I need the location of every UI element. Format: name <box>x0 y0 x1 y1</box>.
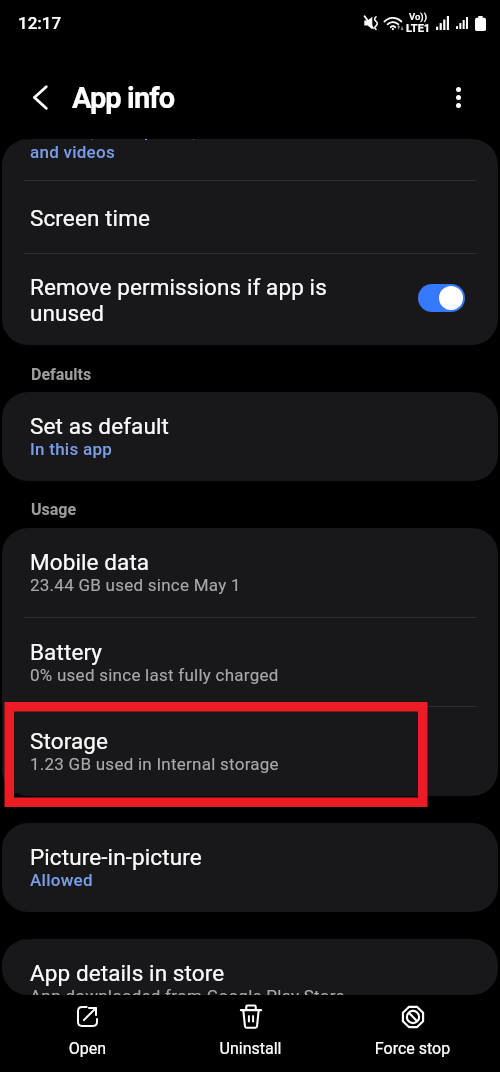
staticText: 12:17 <box>18 13 62 33</box>
button[interactable]: Force stop <box>337 995 488 1072</box>
button[interactable]: Remove permissions if app is unused <box>418 284 465 312</box>
staticText: In this app <box>30 439 113 459</box>
staticText: App downloaded from Google Play Store <box>30 986 345 995</box>
button[interactable]: Battery <box>2 618 498 707</box>
staticText: Set as default <box>30 413 169 439</box>
staticText: Screen time <box>30 205 151 231</box>
staticText: 23.44 GB used since May 1 <box>30 575 241 595</box>
staticText: Force stop <box>337 1039 488 1058</box>
staticText: Storage <box>30 728 109 754</box>
staticText: Usage <box>31 500 77 519</box>
staticText: Remove permissions if app is unused <box>30 274 342 326</box>
staticText: App details in store <box>30 960 225 986</box>
staticText: App info <box>72 81 175 115</box>
button[interactable]: Mobile data <box>2 528 498 617</box>
staticText: Camera, Microphone, Photos and videos <box>30 139 257 163</box>
button[interactable]: Navigate up <box>18 75 62 119</box>
button[interactable]: Storage <box>2 707 498 796</box>
button[interactable]: Picture-in-picture <box>2 823 498 912</box>
button[interactable]: Screen time <box>2 180 498 252</box>
button[interactable]: Open <box>12 995 163 1072</box>
button[interactable]: App details in store <box>2 939 498 995</box>
staticText: Battery <box>30 639 103 665</box>
button[interactable]: Set as default <box>2 392 498 481</box>
button[interactable]: Uninstall <box>175 995 326 1072</box>
staticText: Defaults <box>31 365 92 384</box>
staticText: 0% used since last fully charged <box>30 665 279 685</box>
staticText: Open <box>12 1039 163 1058</box>
staticText: Uninstall <box>175 1039 326 1058</box>
staticText: LTE1 <box>406 22 431 35</box>
staticText: Allowed <box>30 870 93 890</box>
button[interactable]: Remove permissions if app is unused <box>2 253 498 344</box>
button[interactable]: Permissions <box>2 139 498 165</box>
staticText: Mobile data <box>30 549 150 575</box>
staticText: 1.23 GB used in Internal storage <box>30 754 279 774</box>
button[interactable]: More options <box>436 75 480 119</box>
staticText: Picture-in-picture <box>30 844 202 870</box>
staticText: Vo)) <box>409 11 428 22</box>
